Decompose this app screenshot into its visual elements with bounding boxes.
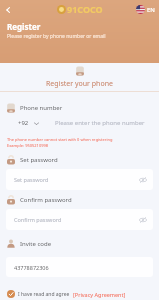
staticText: Please enter the phone number bbox=[55, 119, 145, 127]
button[interactable]: Confirm password bbox=[6, 209, 153, 230]
button[interactable]: 43778872306 bbox=[6, 257, 153, 277]
staticText: Set password bbox=[20, 156, 58, 164]
staticText: [Privacy Agreement] bbox=[73, 291, 126, 298]
staticText: +92 bbox=[18, 119, 29, 127]
button[interactable]: Set password bbox=[6, 169, 153, 190]
staticText: Please register by phone number or email bbox=[7, 33, 106, 40]
staticText: Register your phone bbox=[46, 79, 113, 89]
staticText: Confirm password bbox=[14, 216, 62, 223]
button[interactable]: Register your phone bbox=[46, 66, 113, 89]
other: Show password bbox=[139, 176, 147, 184]
staticText: 43778872306 bbox=[14, 264, 49, 271]
staticText: Example: 9505210998 bbox=[7, 143, 49, 148]
other: Show password bbox=[139, 216, 147, 224]
staticText: 91COCO bbox=[67, 3, 103, 15]
staticText: Phone number bbox=[20, 104, 63, 112]
staticText: Confirm password bbox=[20, 196, 72, 204]
staticText: Set password bbox=[14, 176, 49, 183]
button[interactable]: +92 bbox=[7, 119, 40, 127]
button[interactable]: Language bbox=[136, 5, 155, 14]
button[interactable]: Back bbox=[2, 4, 13, 15]
staticText: The phone number cannot start with 0 whe… bbox=[7, 137, 113, 142]
staticText: Register bbox=[7, 21, 41, 32]
button[interactable]: I have read and agree bbox=[7, 290, 126, 298]
staticText: I have read and agree bbox=[18, 291, 70, 298]
staticText: EN bbox=[147, 6, 155, 14]
staticText: Invite code bbox=[20, 240, 52, 248]
